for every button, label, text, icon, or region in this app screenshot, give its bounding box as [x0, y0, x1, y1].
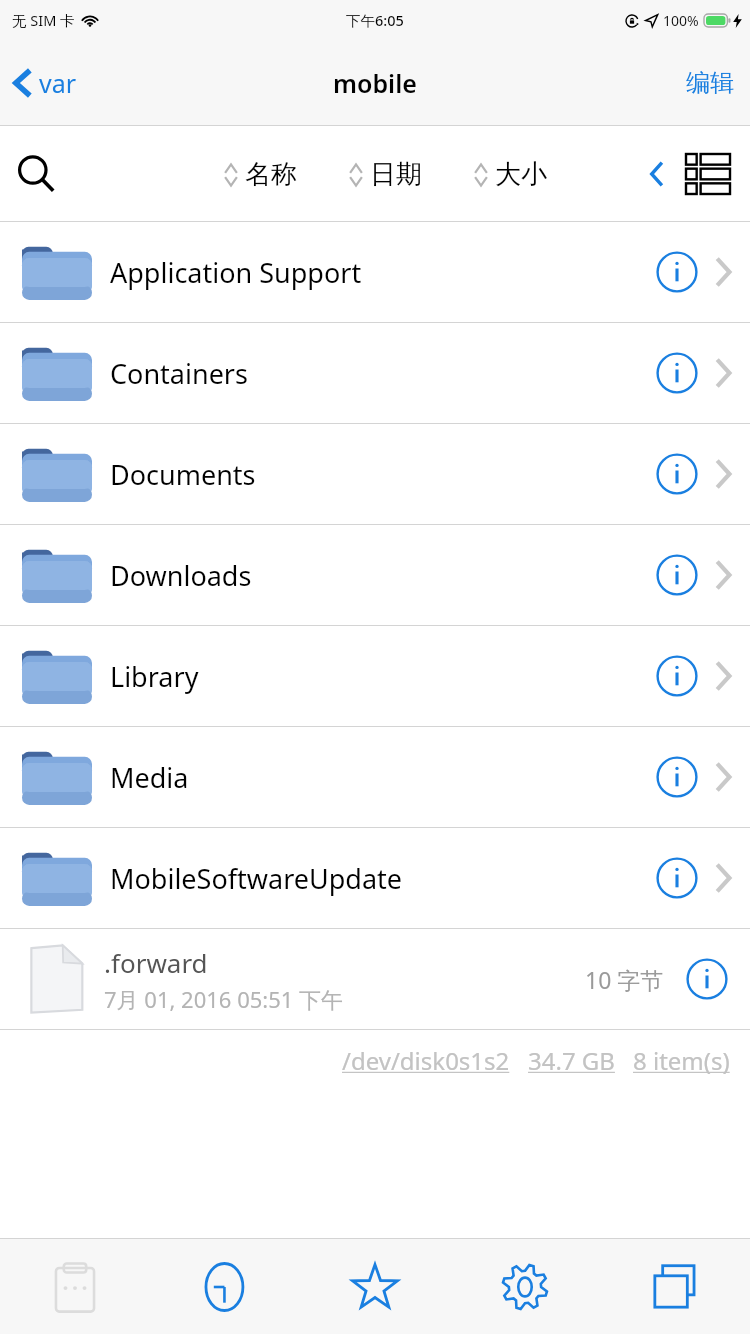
staticText: 34.7 GB — [528, 1044, 615, 1077]
button[interactable]: List view — [678, 146, 738, 202]
staticText: 8 item(s) — [633, 1044, 730, 1077]
staticText: 100% — [663, 11, 699, 30]
staticText: 编辑 — [686, 68, 734, 98]
button[interactable]: Containers — [0, 323, 750, 423]
button[interactable]: 大小 — [470, 150, 551, 199]
button[interactable]: Favorites — [300, 1239, 450, 1334]
button[interactable]: Info — [650, 649, 704, 703]
staticText: /dev/disk0s1s2 — [342, 1044, 510, 1077]
staticText: 10 字节 — [585, 964, 664, 995]
button[interactable]: var — [0, 60, 91, 106]
button[interactable]: 名称 — [220, 150, 301, 199]
staticText: 7月 01, 2016 05:51 下午 — [104, 984, 344, 1014]
button[interactable]: 日期 — [345, 150, 426, 199]
button[interactable]: Info — [650, 346, 704, 400]
button[interactable]: Previous view — [642, 153, 672, 195]
button[interactable]: 编辑 — [670, 60, 750, 106]
button[interactable]: Search — [0, 144, 72, 204]
staticText: 无 SIM 卡 — [12, 10, 75, 30]
button[interactable]: MobileSoftwareUpdate — [0, 828, 750, 928]
button[interactable]: Info — [650, 447, 704, 501]
staticText: Downloads — [110, 557, 650, 594]
button[interactable]: Library — [0, 626, 750, 726]
staticText: Application Support — [110, 254, 650, 291]
staticText: Documents — [110, 456, 650, 493]
staticText: 名称 — [245, 158, 297, 191]
staticText: Library — [110, 658, 650, 695]
button[interactable]: Clipboard — [0, 1239, 150, 1334]
button[interactable]: Info — [650, 548, 704, 602]
staticText: MobileSoftwareUpdate — [110, 860, 650, 897]
button[interactable]: Documents — [0, 424, 750, 524]
staticText: .forward — [104, 945, 208, 980]
button[interactable]: Windows — [600, 1239, 750, 1334]
button[interactable]: .forward — [0, 929, 750, 1029]
button[interactable]: Recents — [150, 1239, 300, 1334]
button[interactable]: Info — [680, 952, 734, 1006]
button[interactable]: Settings — [450, 1239, 600, 1334]
button[interactable]: Media — [0, 727, 750, 827]
button[interactable]: Info — [650, 750, 704, 804]
button[interactable]: Application Support — [0, 222, 750, 322]
staticText: Media — [110, 759, 650, 796]
button[interactable]: Downloads — [0, 525, 750, 625]
staticText: var — [39, 66, 77, 100]
button[interactable]: Info — [650, 245, 704, 299]
button[interactable]: Info — [650, 851, 704, 905]
staticText: Containers — [110, 355, 650, 392]
staticText: 日期 — [370, 158, 422, 191]
staticText: mobile — [333, 66, 417, 100]
staticText: 下午6:05 — [346, 10, 404, 30]
staticText: 大小 — [495, 158, 547, 191]
